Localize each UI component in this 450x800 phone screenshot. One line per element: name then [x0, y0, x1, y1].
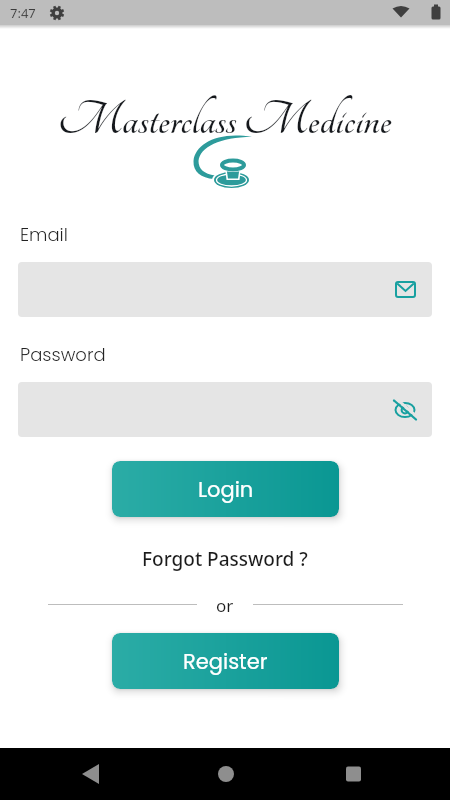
staticText: 7:47	[10, 4, 36, 22]
staticText: Masterclass Medicine	[58, 95, 392, 145]
button[interactable]	[150, 748, 300, 800]
button[interactable]	[300, 748, 450, 800]
staticText: Login	[198, 475, 254, 504]
button[interactable]: Register	[112, 633, 339, 689]
button[interactable]: Forgot Password ?	[142, 546, 308, 572]
staticText: or	[216, 594, 234, 617]
button[interactable]	[0, 748, 150, 800]
button[interactable]: Login	[112, 461, 339, 517]
staticText: Email	[20, 222, 68, 247]
button[interactable]	[18, 382, 432, 437]
staticText: Register	[183, 647, 268, 676]
staticText: Password	[20, 342, 106, 367]
button[interactable]	[18, 262, 432, 317]
